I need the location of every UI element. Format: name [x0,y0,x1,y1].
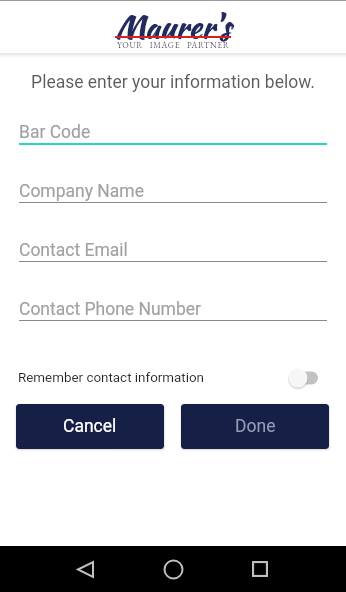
staticText: Contact Email [19,240,128,261]
button[interactable]: Recent apps [239,548,281,590]
button[interactable]: Back [64,548,106,590]
button[interactable]: Remember contact information toggle [288,367,320,389]
button[interactable]: Cancel [16,404,164,449]
staticText: Maurer's [116,3,232,49]
staticText: Done [235,416,276,437]
button[interactable]: Done [181,404,329,449]
staticText: Company Name [19,181,144,202]
staticText: Maurer's [115,3,231,49]
staticText: Cancel [63,416,117,437]
button[interactable]: Home [152,548,194,590]
staticText: Remember contact information [18,370,205,386]
staticText: Bar Code [19,122,91,143]
staticText: Please enter your information below. [0,72,346,93]
staticText: YOUR IMAGE PARTNER [117,39,230,50]
staticText: Contact Phone Number [19,299,201,320]
